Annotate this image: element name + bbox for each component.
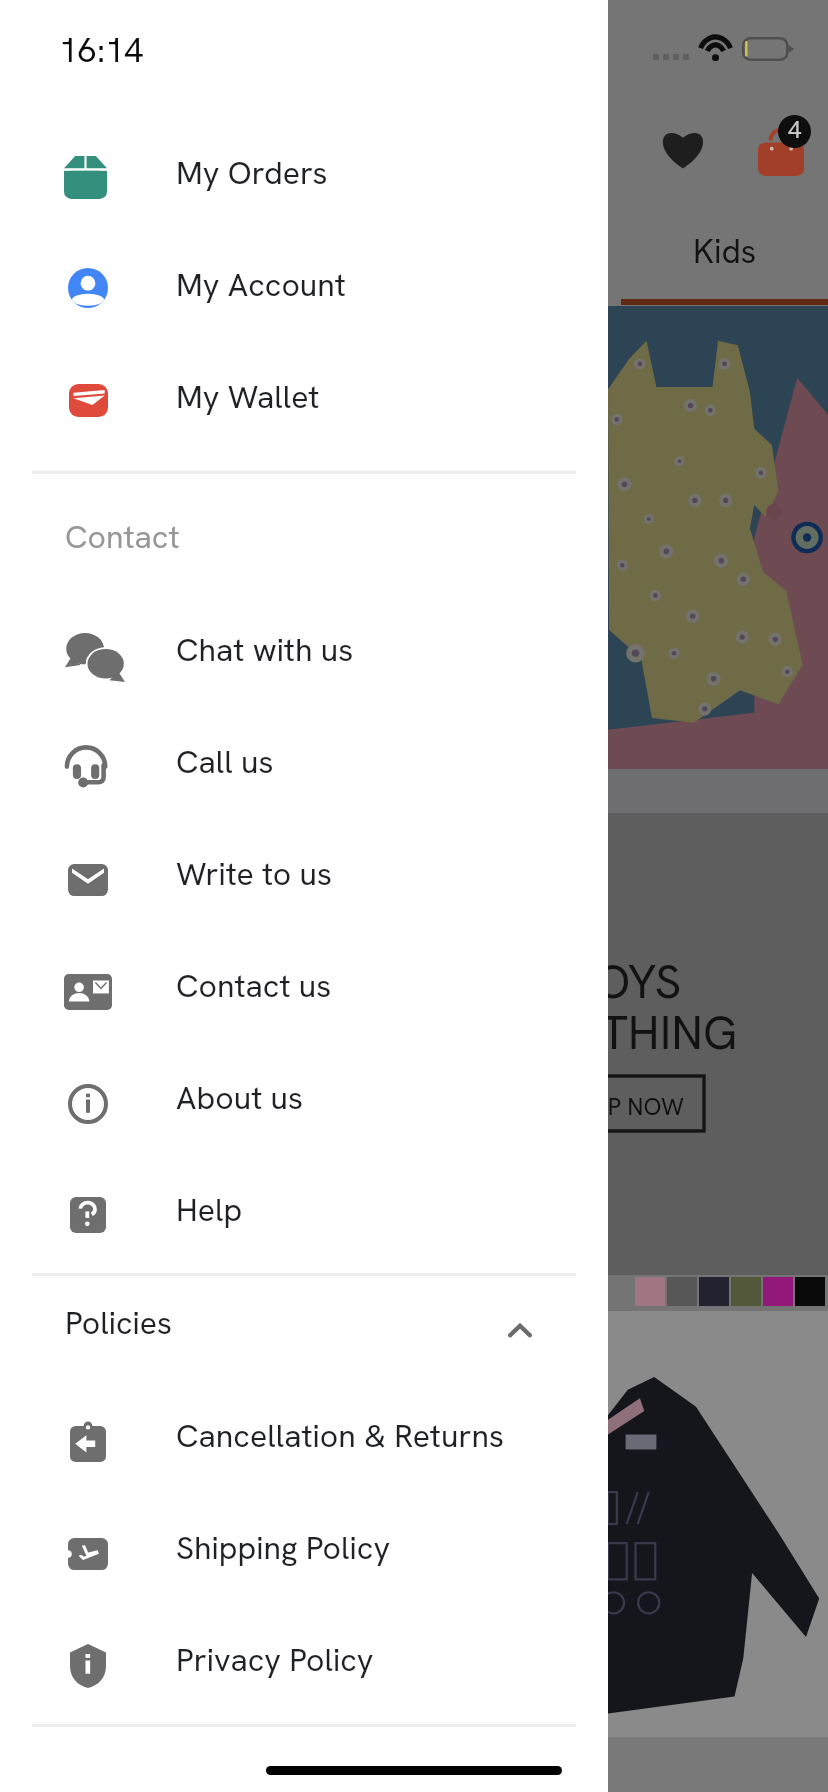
button[interactable]: Write to us	[0, 822, 608, 934]
staticText: SHOP NOW	[560, 1091, 684, 1122]
staticText: CLOTHING	[513, 1002, 738, 1063]
staticText: About us	[176, 1077, 304, 1119]
staticText: Write to us	[176, 853, 333, 895]
button[interactable]: Contact us	[0, 934, 608, 1046]
staticText: Privacy Policy	[176, 1639, 374, 1681]
staticText: Contact	[65, 516, 180, 558]
staticText: Shipping Policy	[176, 1527, 391, 1569]
button[interactable]: About us	[0, 1046, 608, 1158]
staticText: Contact us	[176, 965, 332, 1007]
staticText: My Account	[176, 264, 346, 306]
button[interactable]: My Account	[0, 233, 608, 345]
button[interactable]: Wishlist	[652, 118, 714, 180]
staticText: Cancellation & Returns	[176, 1415, 505, 1457]
button[interactable]: Shipping Policy	[0, 1496, 608, 1608]
staticText: My Orders	[176, 152, 328, 194]
staticText: Kids	[693, 230, 757, 273]
staticText: Chat with us	[176, 629, 354, 671]
button[interactable]: Chat with us	[0, 598, 608, 710]
staticText: Call us	[176, 741, 274, 783]
staticText: BOYS	[567, 951, 682, 1012]
button[interactable]: Cart, 4 items	[752, 118, 820, 180]
button[interactable]: Collapse Policies	[492, 1302, 548, 1358]
button[interactable]: Call us	[0, 710, 608, 822]
staticText: Policies	[65, 1302, 173, 1344]
staticText: Help	[176, 1189, 243, 1231]
button[interactable]: Privacy Policy	[0, 1608, 608, 1720]
staticText: 16:14	[59, 28, 144, 72]
button[interactable]: Help	[0, 1158, 608, 1270]
button[interactable]: Cancellation & Returns	[0, 1384, 608, 1496]
button[interactable]: My Orders	[0, 121, 608, 233]
button[interactable]: My Wallet	[0, 345, 608, 457]
staticText: My Wallet	[176, 376, 320, 418]
staticText: 4	[788, 115, 802, 145]
